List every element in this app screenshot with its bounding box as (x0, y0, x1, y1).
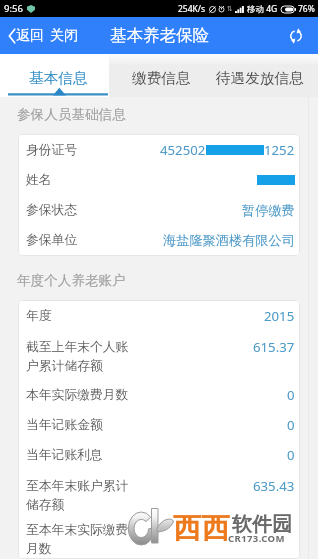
staticText: 年度 (26, 308, 52, 324)
staticText: 至本年末账户累计 储存额 (26, 478, 129, 512)
button[interactable]: 当年记账金额 (18, 410, 300, 440)
button[interactable]: 缴费信息 (109, 54, 213, 97)
button[interactable]: 至本年末实际缴费 月数 (18, 519, 300, 558)
button[interactable]: 返回 (0, 22, 46, 50)
staticText: 身份证号 (26, 142, 78, 158)
button[interactable]: 截至上年末个人账 户累计储存额 (18, 331, 300, 380)
staticText: 2015 (264, 307, 295, 325)
button[interactable]: 当年记账利息 (18, 440, 300, 470)
button[interactable]: 参保单位 (18, 225, 300, 255)
button[interactable]: 姓名 (18, 165, 300, 195)
staticText: 暂停缴费 (242, 202, 295, 219)
staticText: 缴费信息 (132, 69, 191, 87)
staticText: 关闭 (50, 27, 78, 45)
staticText: 基本养老保险 (110, 25, 209, 46)
button[interactable]: 关闭 (46, 22, 82, 50)
staticText: 1252 (264, 141, 295, 159)
staticText: 参保状态 (26, 202, 78, 218)
staticText: 452502 (160, 141, 206, 159)
staticText: ⇅ (227, 5, 233, 13)
staticText: 615.37 (253, 338, 295, 356)
staticText: 0 (287, 416, 295, 434)
staticText: 移动 4G (247, 3, 278, 15)
staticText: 年度个人养老账户 (17, 272, 126, 289)
button[interactable]: Refresh (283, 23, 309, 49)
staticText: 76% (298, 3, 315, 15)
staticText: 参保人员基础信息 (17, 106, 126, 123)
staticText: 254K/s (178, 3, 206, 15)
button[interactable]: 年度 (18, 301, 300, 331)
button[interactable]: 身份证号 (18, 135, 300, 165)
staticText: 西西 (173, 511, 230, 547)
staticText: 0 (287, 446, 295, 464)
staticText: 当年记账金额 (26, 417, 103, 433)
staticText: 返回 (16, 27, 44, 45)
staticText: CR173.COM (228, 532, 285, 545)
staticText: 9:56 (4, 2, 23, 15)
button[interactable]: 至本年末账户累计 储存额 (18, 470, 300, 519)
staticText: 姓名 (26, 172, 52, 188)
staticText: 待遇发放信息 (216, 69, 304, 87)
staticText: 本年实际缴费月数 (26, 387, 129, 403)
staticText: 至本年末实际缴费 月数 (26, 522, 129, 556)
button[interactable]: 基本信息 (0, 54, 109, 97)
staticText: 0 (287, 386, 295, 404)
button[interactable]: 参保状态 (18, 195, 300, 225)
staticText: 软件园 (232, 512, 292, 537)
staticText: 635.43 (253, 477, 295, 495)
staticText: 参保单位 (26, 232, 78, 248)
staticText: 截至上年末个人账 户累计储存额 (26, 339, 129, 373)
staticText: 基本信息 (29, 69, 88, 87)
staticText: 海盐隆聚酒楼有限公司 (163, 232, 295, 249)
button[interactable]: 本年实际缴费月数 (18, 380, 300, 410)
button[interactable]: 待遇发放信息 (213, 54, 318, 97)
staticText: 当年记账利息 (26, 447, 103, 463)
